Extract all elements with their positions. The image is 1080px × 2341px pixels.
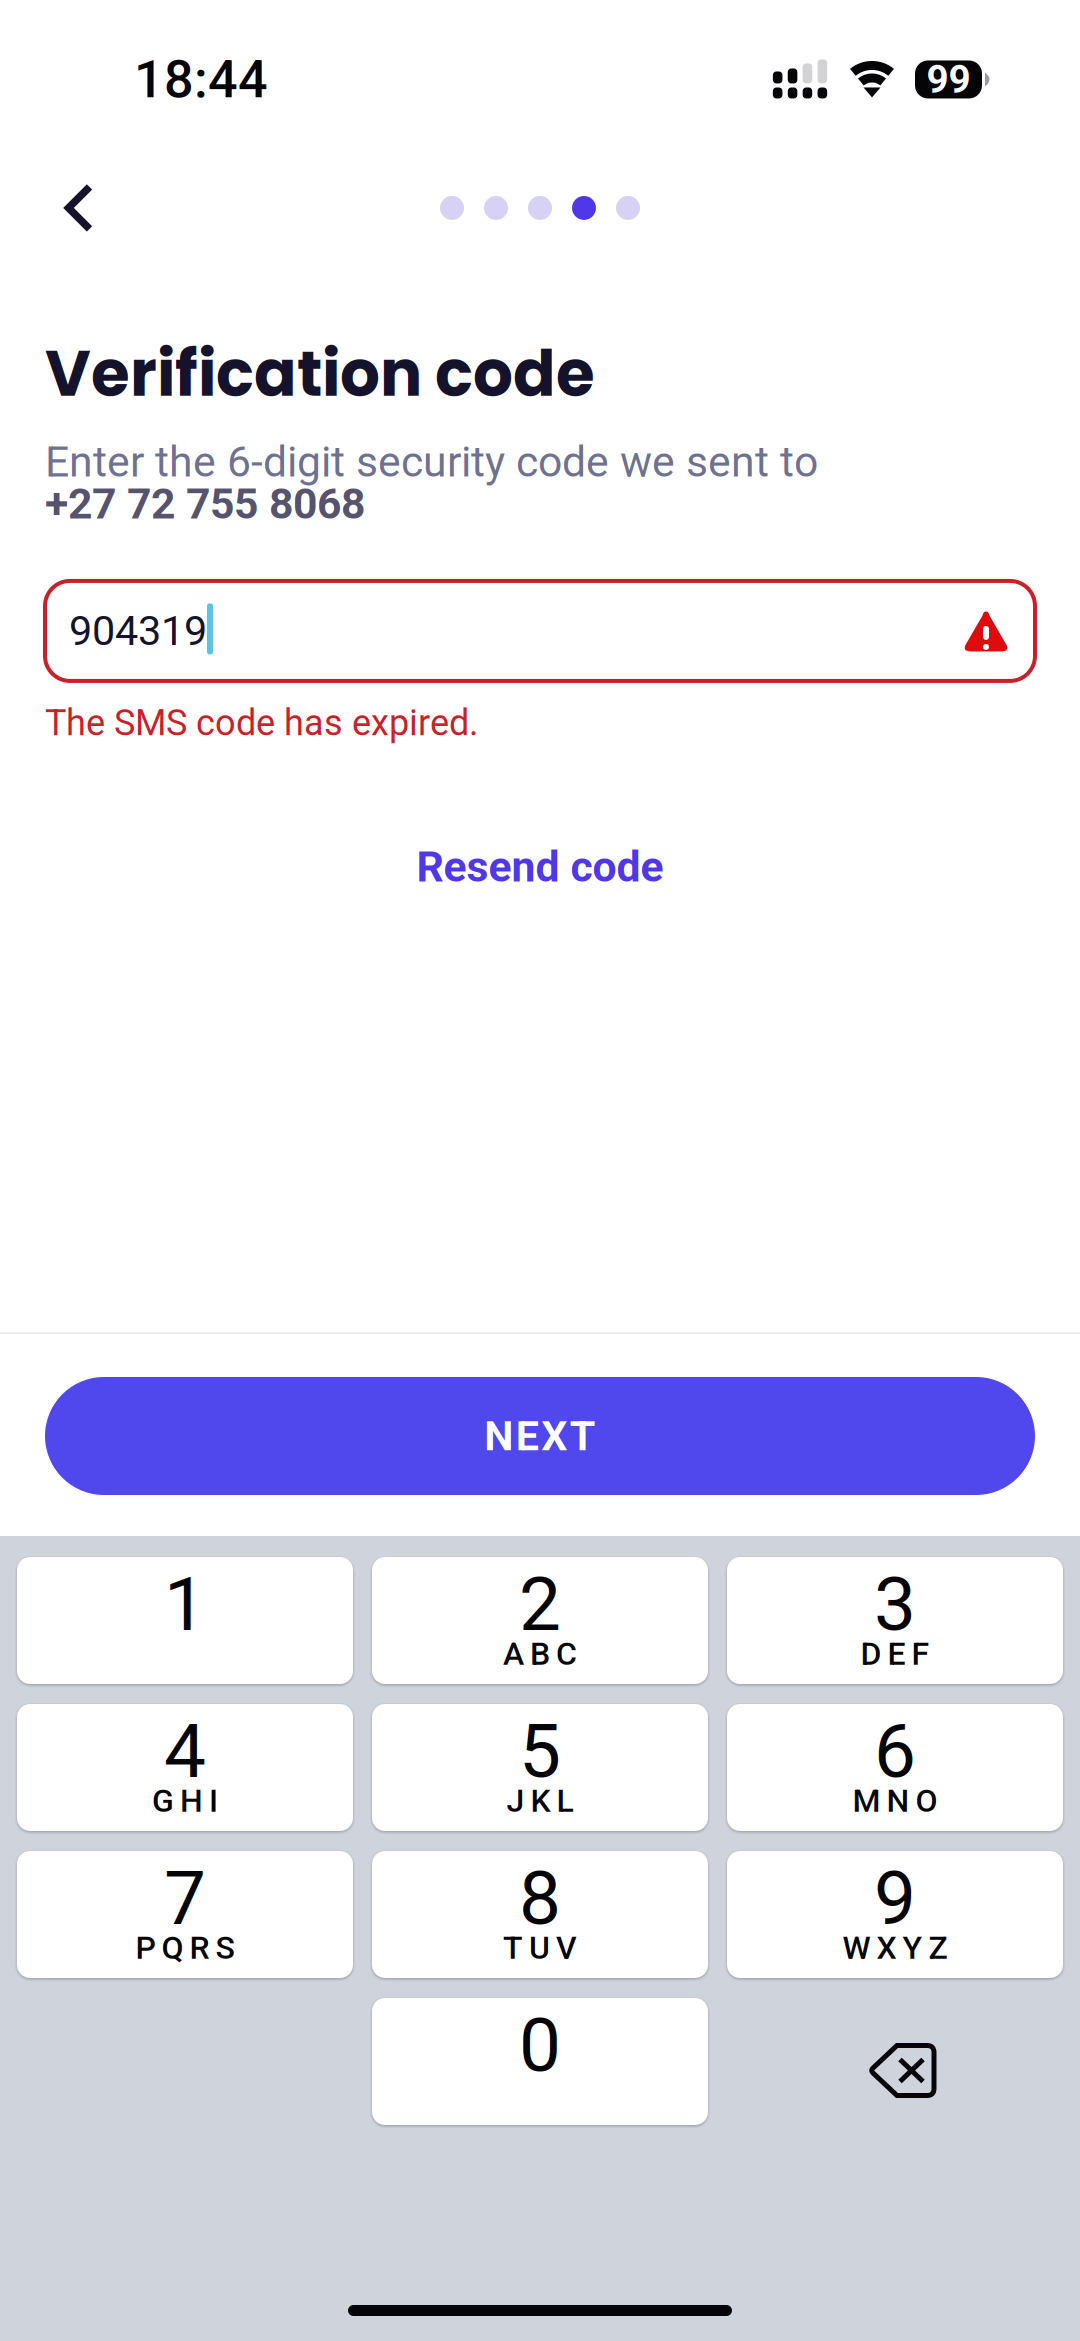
staticText: N (886, 1782, 909, 1819)
staticText: D (860, 1635, 881, 1672)
staticText: B (530, 1635, 550, 1672)
staticText: R (189, 1929, 209, 1966)
staticText: NEXT (484, 1412, 596, 1460)
button[interactable]: 8 (372, 1851, 708, 1978)
staticText: S (215, 1929, 234, 1966)
staticText: A (503, 1635, 524, 1672)
staticText: E (887, 1635, 905, 1672)
staticText: V (556, 1929, 577, 1966)
staticText: I (209, 1782, 218, 1819)
button[interactable]: Delete (727, 1998, 1063, 2125)
staticText: G (152, 1782, 174, 1819)
staticText: 904319 (69, 607, 207, 655)
button[interactable]: 0 (372, 1998, 708, 2125)
staticText: 2 (519, 1561, 561, 1648)
staticText: 4 (164, 1708, 206, 1795)
staticText: 18:44 (134, 49, 268, 110)
button[interactable]: 9 (727, 1851, 1063, 1978)
staticText: F (911, 1635, 929, 1672)
staticText: 9 (874, 1855, 916, 1942)
staticText: Q (161, 1929, 183, 1966)
staticText: M (852, 1782, 880, 1819)
staticText: W (842, 1929, 870, 1966)
staticText: Verification code (45, 330, 595, 418)
staticText: L (556, 1782, 573, 1819)
staticText: 99 (926, 57, 970, 102)
staticText: The SMS code has expired. (45, 702, 478, 744)
staticText: O (915, 1782, 937, 1819)
staticText: 3 (874, 1561, 916, 1648)
button[interactable]: 7 (17, 1851, 353, 1978)
button[interactable]: 4 (17, 1704, 353, 1831)
staticText: 1 (164, 1561, 206, 1648)
button[interactable]: 2 (372, 1557, 708, 1684)
staticText: 8 (519, 1855, 561, 1942)
button[interactable]: 5 (372, 1704, 708, 1831)
staticText: H (180, 1782, 203, 1819)
button[interactable]: 6 (727, 1704, 1063, 1831)
staticText: 6 (874, 1708, 916, 1795)
staticText: 5 (519, 1708, 561, 1795)
button[interactable]: 1 (17, 1557, 353, 1684)
staticText: Z (928, 1929, 947, 1966)
staticText: Y (902, 1929, 922, 1966)
button[interactable]: Back (37, 178, 121, 238)
staticText: K (530, 1782, 550, 1819)
staticText: C (556, 1635, 577, 1672)
staticText: P (135, 1929, 155, 1966)
staticText: Resend code (416, 842, 663, 892)
staticText: +27 72 755 8068 (45, 479, 365, 529)
button[interactable]: 3 (727, 1557, 1063, 1684)
staticText: T (503, 1929, 523, 1966)
button[interactable]: NEXT (45, 1377, 1035, 1495)
button[interactable]: Resend code (0, 824, 1080, 910)
staticText: 7 (164, 1855, 206, 1942)
staticText: 0 (519, 2002, 561, 2089)
staticText: X (876, 1929, 896, 1966)
staticText: U (529, 1929, 550, 1966)
staticText: J (506, 1782, 524, 1819)
staticText: Enter the 6-digit security code we sent … (45, 437, 818, 487)
